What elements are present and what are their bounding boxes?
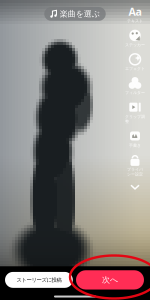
button[interactable]: 次へ xyxy=(76,270,144,289)
staticText: Aa xyxy=(128,4,141,19)
staticText: ストーリーズに投稿 xyxy=(16,277,61,283)
button[interactable]: 手書き xyxy=(124,129,145,148)
staticText: 次へ xyxy=(102,275,118,285)
staticText: プライバシー設定 xyxy=(127,167,143,177)
button[interactable]: エフェクト xyxy=(124,53,145,71)
button[interactable]: フィルター xyxy=(124,77,145,95)
staticText: クリップ調整 xyxy=(125,114,145,124)
staticText: フィルター xyxy=(125,90,145,95)
button[interactable]: 楽曲を選ぶ xyxy=(44,7,106,21)
staticText: エフェクト xyxy=(125,66,145,71)
button[interactable]: ストーリーズに投稿 xyxy=(5,272,73,288)
button[interactable]: さらに表示 xyxy=(122,182,148,192)
button[interactable]: Aa xyxy=(124,5,145,23)
button[interactable]: クリップ調整 xyxy=(124,101,145,124)
staticText: ステッカー xyxy=(125,42,145,47)
staticText: 楽曲を選ぶ xyxy=(60,9,100,19)
button[interactable]: プライバシー設定 xyxy=(124,153,145,177)
staticText: テキスト xyxy=(127,18,143,23)
button[interactable]: ステッカー xyxy=(124,29,145,47)
staticText: 手書き xyxy=(129,143,141,148)
